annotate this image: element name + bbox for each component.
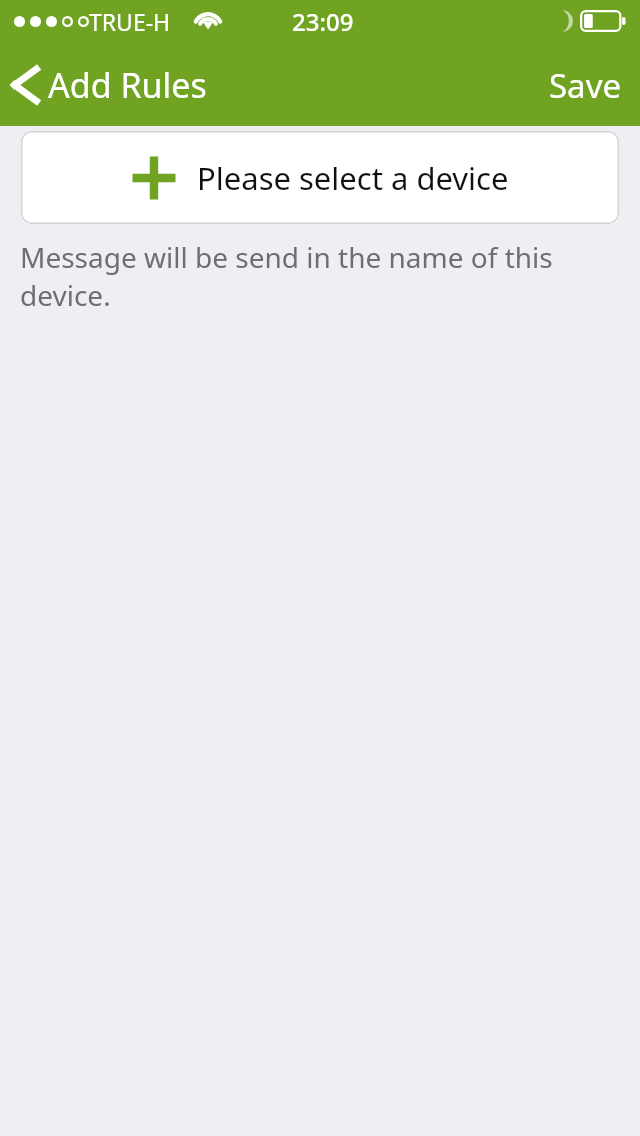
button[interactable]: Back xyxy=(0,52,221,118)
staticText: Please select a device xyxy=(197,157,509,199)
staticText: 23:09 xyxy=(292,5,354,38)
button[interactable]: Save xyxy=(531,51,640,120)
staticText: Save xyxy=(549,63,622,108)
staticText: TRUE-H xyxy=(89,6,171,37)
staticText: Message will be send in the name of this… xyxy=(20,238,640,314)
other: Back xyxy=(12,66,38,104)
staticText: Add Rules xyxy=(48,62,207,108)
button[interactable]: Please select a device xyxy=(21,131,619,224)
